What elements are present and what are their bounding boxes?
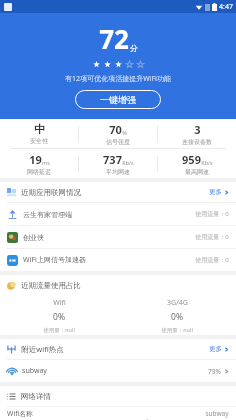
staticText: ms bbox=[42, 159, 50, 166]
staticText: 连接设备数 bbox=[182, 138, 212, 146]
staticText: 使用量：null bbox=[43, 326, 75, 334]
button[interactable]: subway bbox=[0, 360, 236, 382]
staticText: Kb/s bbox=[201, 159, 213, 166]
staticText: 更多 bbox=[209, 345, 222, 353]
button[interactable]: 3 bbox=[158, 119, 236, 148]
button[interactable]: Wifi bbox=[0, 298, 118, 334]
staticText: 平均网速 bbox=[106, 168, 130, 176]
staticText: 近期流量使用占比 bbox=[21, 281, 81, 290]
staticText: 使用流量：0 bbox=[195, 256, 229, 264]
staticText: 3 bbox=[194, 122, 201, 137]
staticText: 网络详情 bbox=[21, 392, 51, 401]
staticText: 更多 bbox=[209, 188, 222, 196]
staticText: 最高网速 bbox=[185, 168, 209, 176]
staticText: 安全性 bbox=[30, 137, 48, 145]
button[interactable]: 网络详情 bbox=[0, 386, 236, 406]
button[interactable]: 19 bbox=[0, 149, 78, 178]
staticText: 一键增强 bbox=[100, 94, 136, 105]
staticText: subway bbox=[22, 366, 47, 376]
staticText: 4:47 bbox=[219, 2, 233, 12]
staticText: 0% bbox=[53, 311, 65, 323]
staticText: 19 bbox=[29, 152, 42, 167]
button[interactable]: 云生有家管理端 bbox=[0, 203, 236, 225]
staticText: 云生有家管理端 bbox=[23, 210, 72, 219]
staticText: % bbox=[122, 129, 127, 136]
staticText: Wifi bbox=[53, 298, 66, 308]
staticText: 有12项可优化项活捷提升WiFi功能 bbox=[65, 74, 171, 84]
staticText: 72 bbox=[99, 21, 129, 56]
staticText: 创业侠 bbox=[23, 233, 44, 242]
staticText: 0% bbox=[171, 311, 183, 323]
button[interactable]: 近期流量使用占比 bbox=[0, 275, 236, 295]
staticText: 网络延迟 bbox=[27, 168, 51, 176]
staticText: 近期应用联网情况 bbox=[21, 188, 81, 197]
button[interactable]: 959 bbox=[158, 149, 236, 178]
button[interactable]: Wifi名称 bbox=[0, 407, 236, 420]
button[interactable]: 3G/4G bbox=[118, 298, 236, 334]
button[interactable]: 737 bbox=[79, 149, 157, 178]
button[interactable]: 中 bbox=[0, 119, 78, 148]
staticText: 中 bbox=[34, 122, 45, 136]
button[interactable]: WiFi上网信号加速器 bbox=[0, 249, 236, 271]
staticText: 信号强度 bbox=[106, 138, 130, 146]
button[interactable]: 70 bbox=[79, 119, 157, 148]
button[interactable]: 附近wifi热点 bbox=[0, 339, 236, 359]
staticText: 737 bbox=[103, 152, 122, 167]
staticText: 3G/4G bbox=[167, 298, 188, 308]
staticText: 959 bbox=[182, 152, 201, 167]
staticText: 70 bbox=[109, 122, 122, 137]
staticText: subway bbox=[205, 409, 229, 418]
staticText: 使用流量：0 bbox=[195, 210, 229, 218]
staticText: 79% bbox=[208, 367, 221, 376]
staticText: 使用流量：0 bbox=[195, 233, 229, 241]
button[interactable]: 近期应用联网情况 bbox=[0, 182, 236, 202]
staticText: 附近wifi热点 bbox=[21, 344, 64, 354]
staticText: 使用量：null bbox=[161, 326, 193, 334]
button[interactable]: 一键增强 bbox=[75, 90, 161, 109]
staticText: WiFi上网信号加速器 bbox=[23, 255, 86, 265]
staticText: Wifi名称 bbox=[7, 409, 33, 418]
button[interactable]: 创业侠 bbox=[0, 226, 236, 248]
staticText: 分 bbox=[130, 43, 138, 53]
staticText: Kb/s bbox=[122, 159, 134, 166]
